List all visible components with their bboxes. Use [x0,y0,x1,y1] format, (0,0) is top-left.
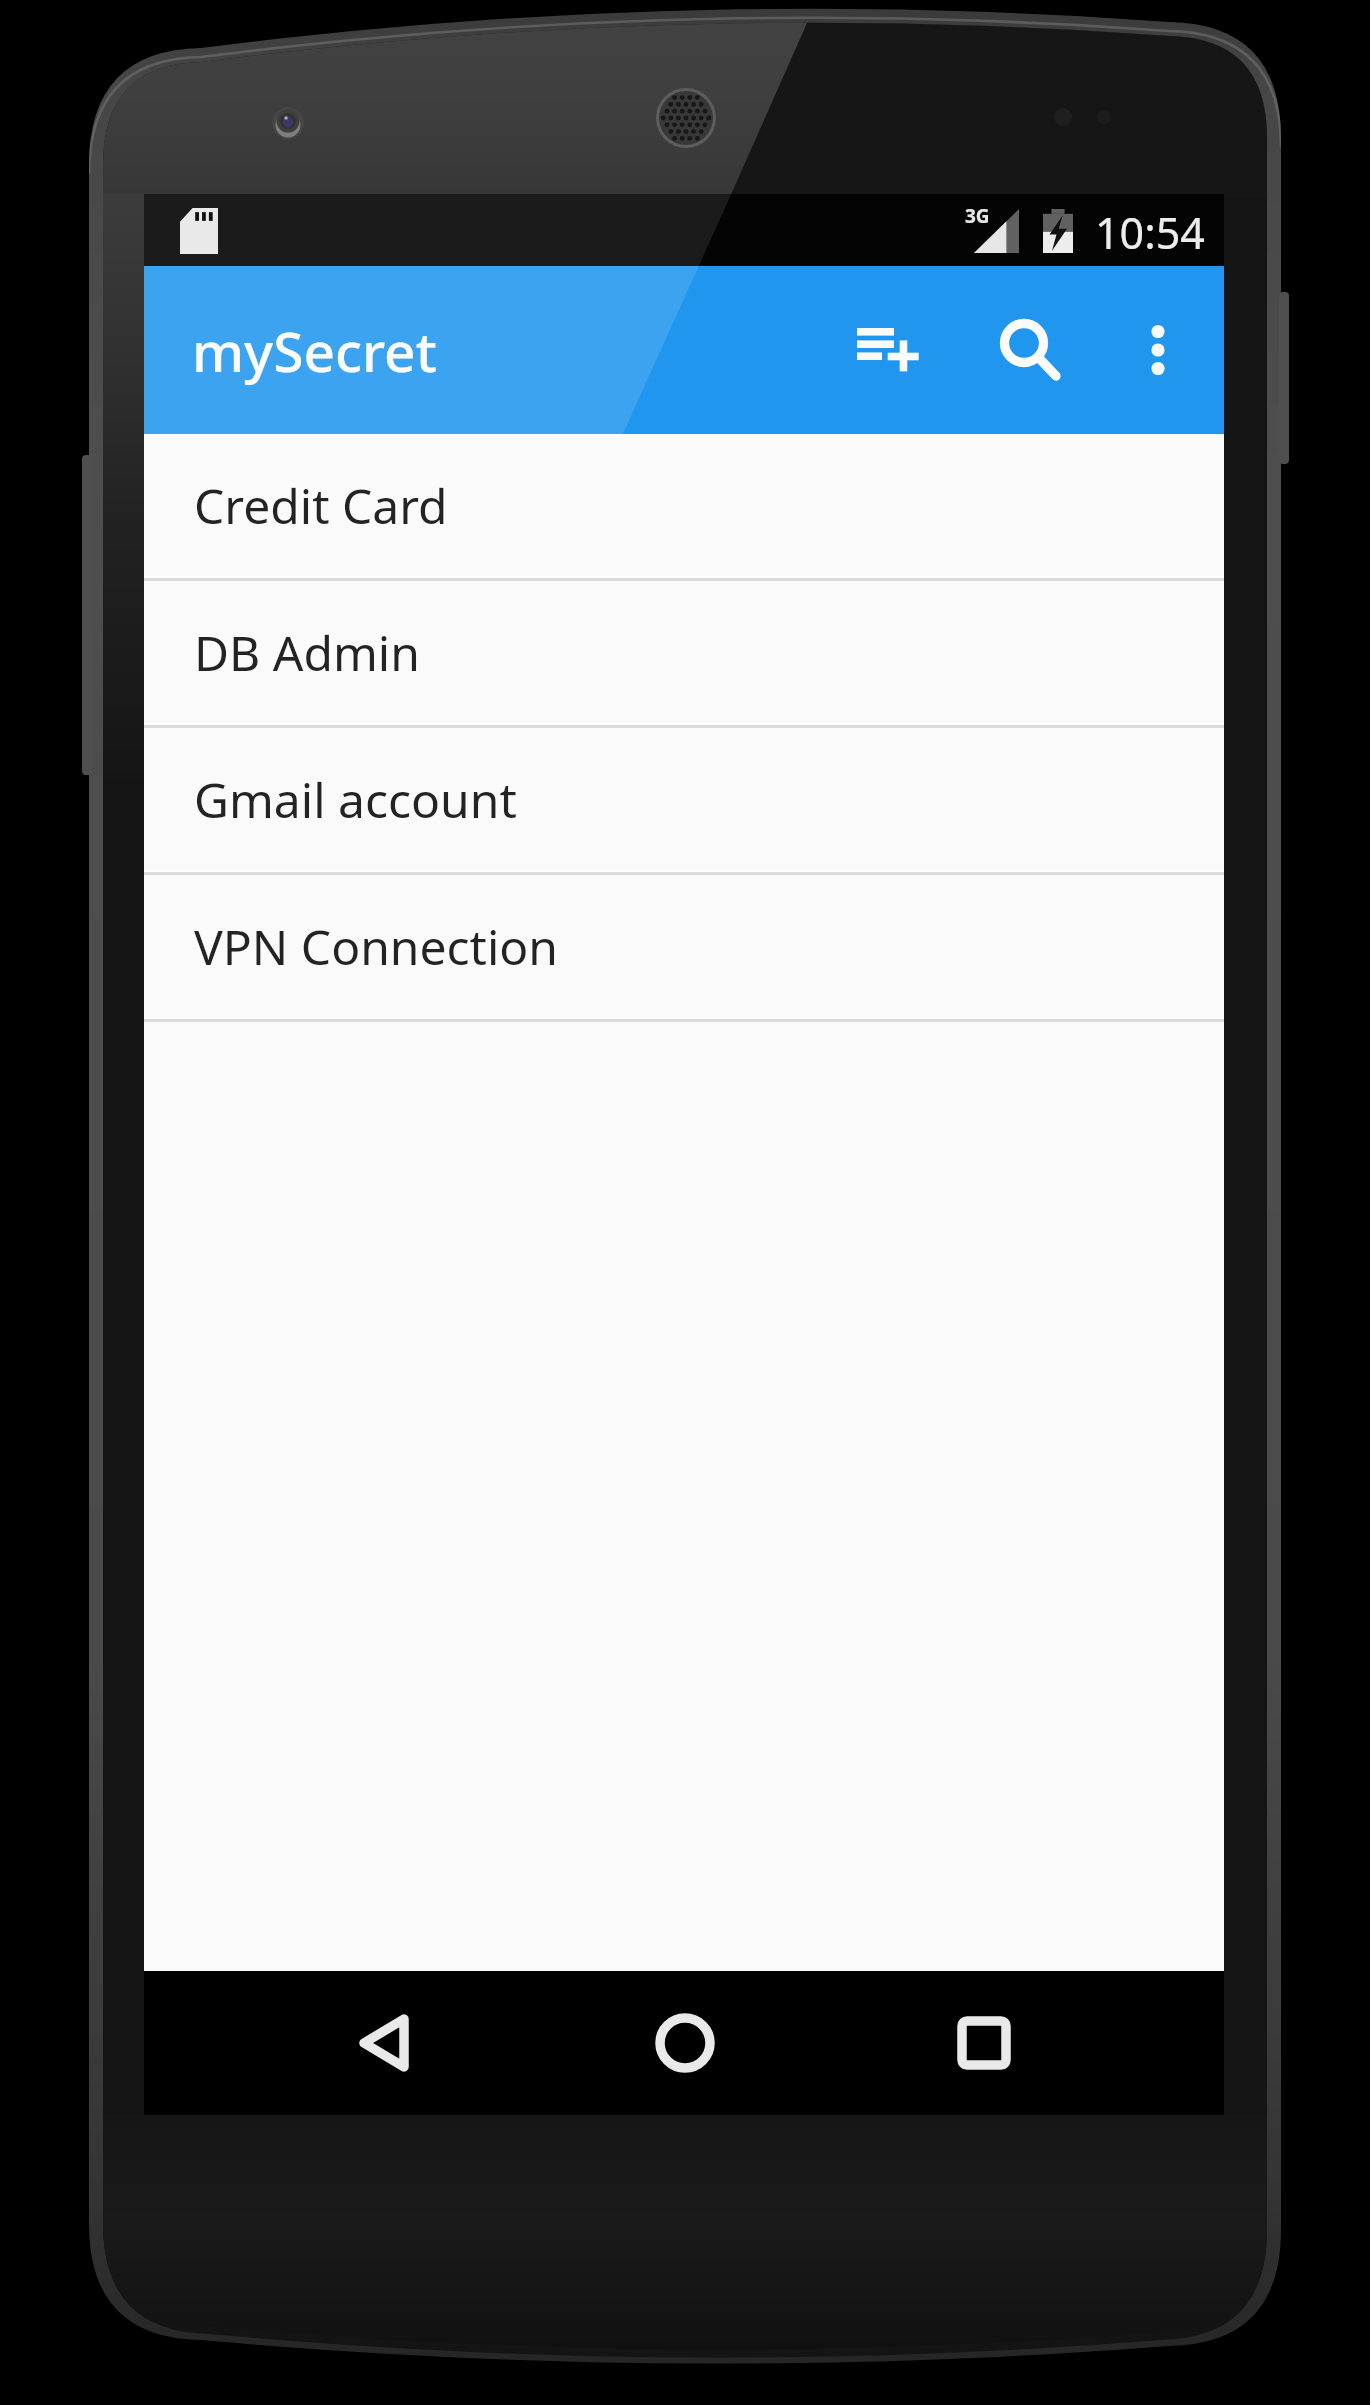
button[interactable]: More options [1074,266,1242,434]
button[interactable]: DB Admin [144,581,1224,728]
button[interactable]: Search [940,266,1108,434]
staticText: Gmail account [194,767,517,832]
staticText: VPN Connection [194,914,559,979]
staticText: 10:54 [1095,203,1205,262]
button[interactable]: Add item [804,266,972,434]
button[interactable]: Gmail account [144,728,1224,875]
staticText: Credit Card [194,473,448,538]
button[interactable]: Credit Card [144,434,1224,581]
button[interactable]: Recents [904,1971,1064,2115]
button[interactable]: Back [304,1971,464,2115]
staticText: mySecret [192,313,437,388]
button[interactable]: Home [605,1971,765,2115]
button[interactable]: VPN Connection [144,875,1224,1022]
staticText: 3G [965,203,990,229]
staticText: DB Admin [194,620,420,685]
